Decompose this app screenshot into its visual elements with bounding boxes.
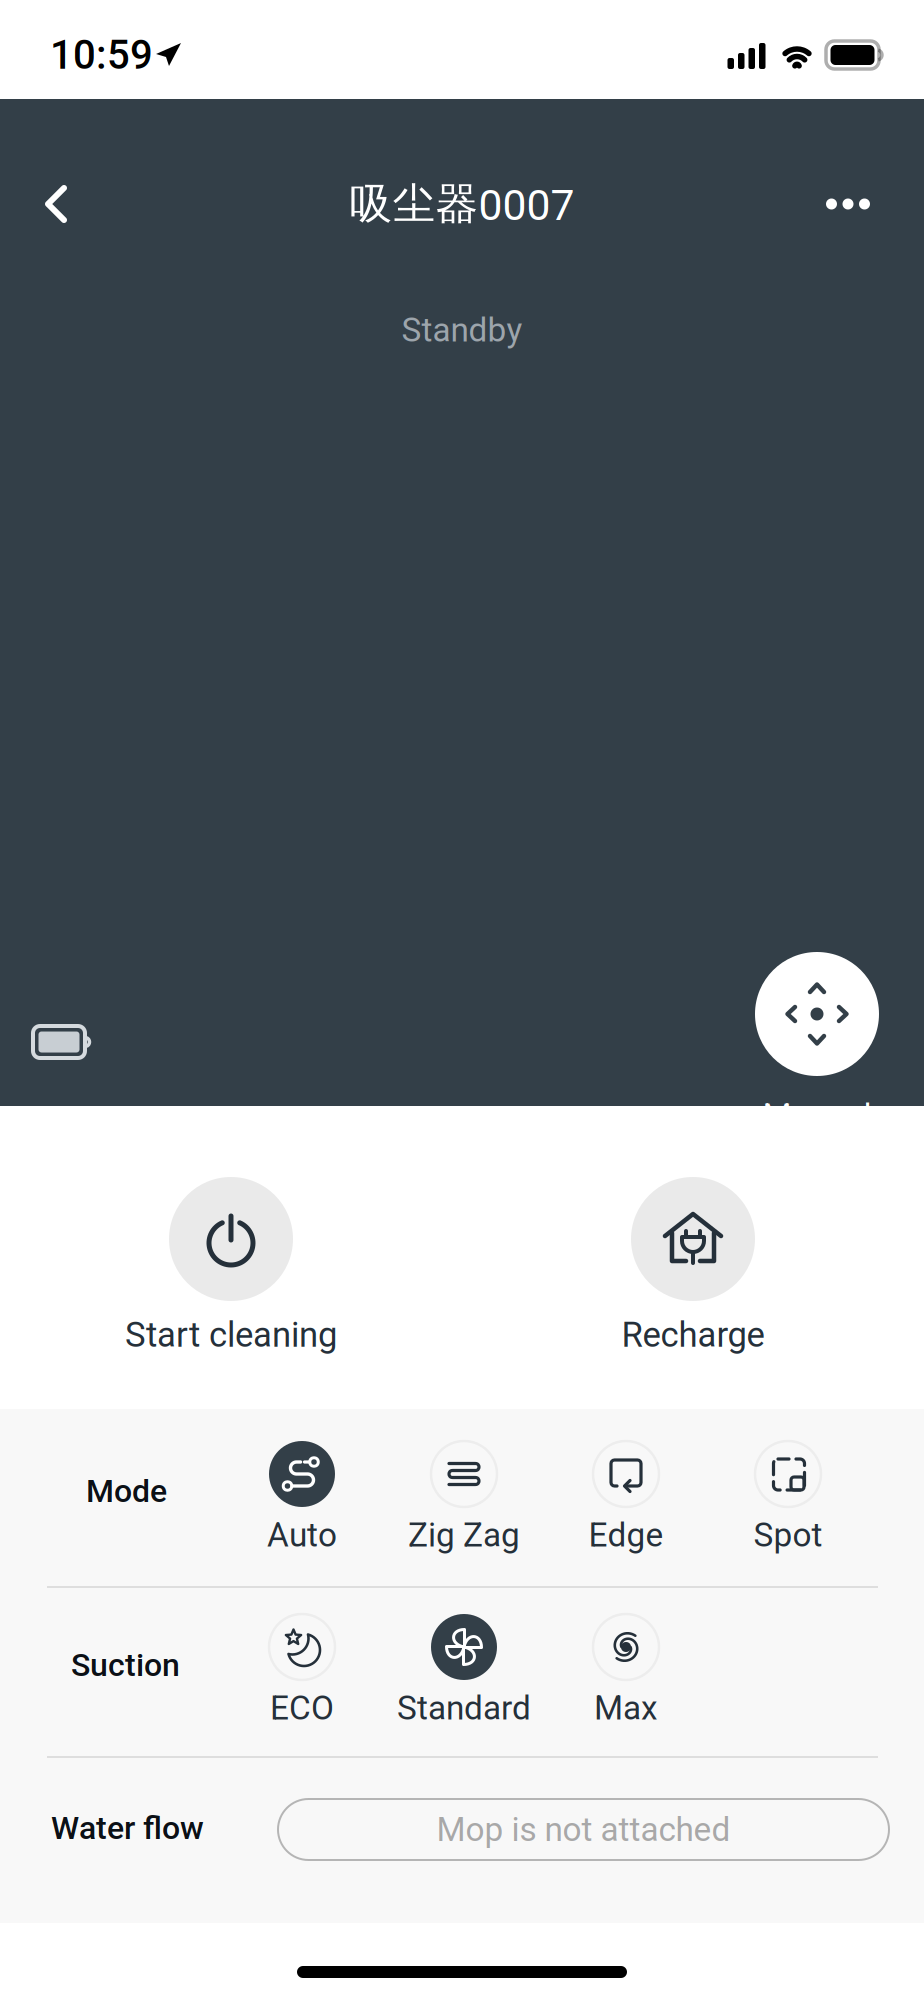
staticText: ECO [270, 1688, 334, 1728]
button[interactable]: Standard [383, 1614, 545, 1734]
staticText: Water flow [51, 1809, 204, 1847]
staticText: Spot [753, 1515, 822, 1555]
staticText: Max [594, 1688, 658, 1728]
button[interactable]: Start cleaning [0, 1106, 462, 1409]
button[interactable]: Recharge [462, 1106, 924, 1409]
staticText: Mode [86, 1472, 167, 1510]
button[interactable]: More options [790, 99, 924, 309]
button[interactable]: Manual [730, 952, 904, 1106]
staticText: Suction [71, 1646, 180, 1684]
staticText: Edge [588, 1515, 663, 1555]
button[interactable]: Mop is not attached [278, 1799, 889, 1860]
staticText: Start cleaning [125, 1315, 337, 1355]
staticText: Standard [397, 1688, 531, 1728]
button[interactable]: Zig Zag [383, 1441, 545, 1561]
button[interactable]: Edge [545, 1441, 707, 1561]
staticText: Mop is not attached [436, 1810, 730, 1849]
staticText: 吸尘器0007 [349, 177, 574, 231]
staticText: Zig Zag [408, 1515, 520, 1555]
staticText: 10:59 [50, 32, 153, 78]
button[interactable]: Auto [221, 1441, 383, 1561]
button[interactable]: Spot [707, 1441, 869, 1561]
staticText: Auto [267, 1515, 337, 1555]
button[interactable]: Back [0, 99, 103, 309]
button[interactable]: ECO [221, 1614, 383, 1734]
staticText: Standby [401, 310, 522, 350]
staticText: Manual [762, 1096, 871, 1136]
button[interactable]: Max [545, 1614, 707, 1734]
staticText: Recharge [621, 1315, 764, 1355]
